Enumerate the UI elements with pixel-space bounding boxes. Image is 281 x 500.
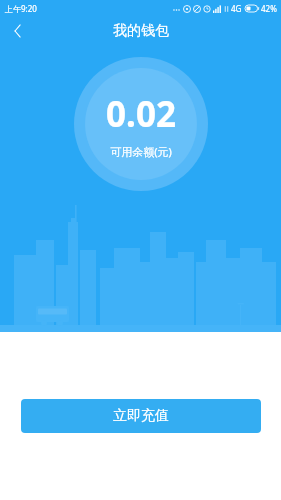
staticText: 立即充值 bbox=[113, 407, 169, 425]
button[interactable]: Back bbox=[0, 16, 36, 46]
staticText: 上午9:20 bbox=[5, 3, 37, 14]
staticText: 42% bbox=[261, 3, 277, 14]
staticText: 4G bbox=[231, 3, 242, 14]
staticText: 0.02 bbox=[106, 90, 176, 138]
button[interactable]: 立即充值 bbox=[21, 399, 261, 433]
staticText: 我的钱包 bbox=[113, 22, 169, 40]
staticText: 可用余额(元) bbox=[110, 144, 172, 159]
